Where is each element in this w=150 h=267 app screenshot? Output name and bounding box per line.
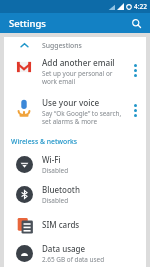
staticText: SIM cards [42, 219, 80, 230]
button[interactable]: Bluetooth settings [6, 179, 144, 209]
button[interactable]: Suggestions [6, 37, 144, 54]
staticText: Data usage [42, 243, 86, 254]
button[interactable]: Search [128, 15, 144, 31]
staticText: Add another email account [42, 57, 126, 68]
staticText: Suggestions [42, 41, 82, 50]
button[interactable]: SIM cards settings [6, 209, 144, 239]
staticText: Say “Ok Google” to search, set alarms & … [42, 109, 126, 126]
staticText: Set up your personal or work email [42, 69, 126, 86]
staticText: Settings [9, 17, 46, 30]
staticText: Use your voice [42, 97, 100, 108]
staticText: Bluetooth [42, 184, 80, 195]
staticText: 2.65 GB of data used [42, 255, 105, 264]
button[interactable]: Add another email account [6, 54, 144, 94]
staticText: Disabled [42, 196, 69, 205]
button[interactable]: More options [128, 100, 142, 120]
staticText: 4:22 [134, 2, 147, 11]
button[interactable]: Use your voice [6, 94, 144, 134]
button[interactable]: Wi-Fi settings [6, 149, 144, 179]
staticText: Wi-Fi [42, 154, 61, 165]
staticText: Wireless & networks [11, 137, 78, 146]
staticText: Disabled [42, 166, 69, 175]
button[interactable]: More options [128, 60, 142, 80]
button[interactable]: Data usage settings [6, 239, 144, 267]
